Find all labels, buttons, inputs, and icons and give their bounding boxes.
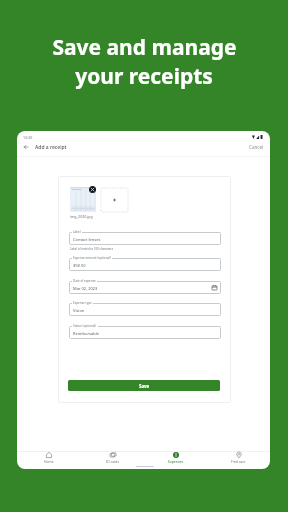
staticText: Reimbursable: [73, 331, 100, 336]
button[interactable]: Save: [68, 380, 220, 391]
staticText: Expense type: [73, 301, 92, 305]
staticText: Label is limited to 100 characters: [70, 247, 114, 251]
button[interactable]: Mar 02, 2023: [69, 281, 221, 294]
staticText: Save: [139, 383, 150, 389]
staticText: your receipts: [75, 62, 213, 91]
staticText: 13:30: [23, 135, 33, 140]
button[interactable]: ID cards: [81, 451, 144, 464]
button[interactable]: Contact lenses: [69, 232, 221, 245]
button[interactable]: Vision: [69, 303, 221, 316]
staticText: Status (optional): [73, 324, 97, 328]
staticText: Save and manage: [52, 33, 237, 62]
button[interactable]: Expenses: [144, 451, 207, 464]
staticText: Mar 02, 2023: [73, 286, 98, 291]
button[interactable]: Cancel: [249, 144, 264, 150]
button[interactable]: Find care: [207, 451, 270, 464]
staticText: Home: [44, 459, 54, 464]
staticText: Label: [73, 230, 81, 234]
staticText: Cancel: [249, 144, 264, 150]
staticText: Contact lenses: [73, 237, 101, 242]
staticText: Vision: [73, 308, 85, 313]
staticText: img_2020.jpg: [70, 214, 93, 219]
staticText: Add a receipt: [35, 144, 67, 151]
button[interactable]: Back: [20, 141, 32, 153]
button[interactable]: Reimbursable: [69, 326, 221, 339]
staticText: Expense amount (optional): [73, 256, 111, 260]
staticText: Expenses: [168, 459, 184, 464]
staticText: Find care: [231, 459, 246, 464]
staticText: Date of expense: [73, 279, 96, 283]
button[interactable]: Home: [17, 451, 81, 464]
button[interactable]: Add photo: [101, 188, 128, 212]
button[interactable]: Remove photo: [89, 186, 96, 193]
staticText: $58.50: [73, 263, 86, 268]
button[interactable]: $58.50: [69, 258, 221, 271]
staticText: ID cards: [106, 459, 120, 464]
